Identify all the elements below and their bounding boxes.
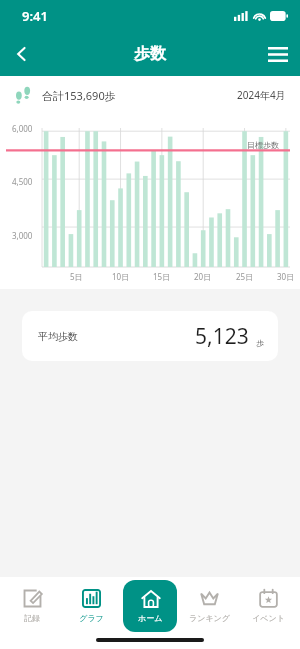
staticText: 歩数	[134, 44, 166, 64]
staticText: 5,123	[195, 322, 249, 351]
button[interactable]: 平均歩数	[22, 311, 278, 361]
staticText: 30日	[277, 271, 295, 282]
staticText: イベント	[252, 613, 285, 623]
staticText: 10日	[112, 271, 130, 282]
button[interactable]: イベント	[240, 577, 296, 635]
staticText: 25日	[236, 271, 254, 282]
staticText: 2024年4月	[237, 88, 286, 102]
button[interactable]: グラフ	[63, 577, 119, 635]
staticText: ホーム	[138, 613, 163, 623]
staticText: 9:41	[22, 7, 48, 25]
staticText: 合計153,690歩	[42, 88, 116, 103]
staticText: ランキング	[189, 613, 230, 623]
button[interactable]: 記録	[4, 577, 60, 635]
staticText: 5日	[70, 271, 83, 282]
staticText: 6,000	[12, 123, 33, 134]
button[interactable]: Menu	[256, 32, 300, 76]
button[interactable]: Back	[0, 32, 44, 76]
staticText: 歩	[256, 338, 264, 348]
staticText: 3,000	[12, 230, 33, 241]
staticText: 平均歩数	[38, 330, 78, 343]
staticText: グラフ	[79, 613, 104, 623]
staticText: 目標歩数	[247, 140, 279, 150]
staticText: 15日	[153, 271, 171, 282]
staticText: 記録	[24, 613, 40, 623]
button[interactable]: ランキング	[181, 577, 237, 635]
button[interactable]: ホーム	[123, 580, 177, 632]
staticText: 4,500	[12, 176, 33, 187]
staticText: 20日	[194, 271, 212, 282]
